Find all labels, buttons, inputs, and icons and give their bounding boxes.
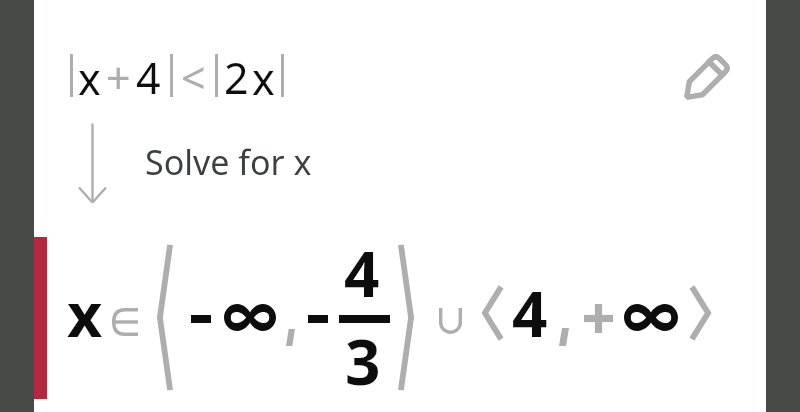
staticText: x [78,49,101,108]
button[interactable]: Edit [673,47,737,111]
button[interactable]: Answer: x in (-infinity, -4/3) union (4,… [47,237,727,399]
staticText: 4 [512,271,548,355]
staticText: 4 [344,231,380,315]
staticText: < [181,48,206,107]
staticText: + [106,48,131,107]
staticText: 4 [136,48,161,107]
button[interactable]: Problem: |x+4| < |2x| [60,40,300,112]
staticText: x [67,272,103,355]
staticText: x [252,49,275,108]
staticText: 2 [224,48,249,107]
staticText: Solve for x [145,139,312,185]
staticText: 3 [345,319,381,403]
